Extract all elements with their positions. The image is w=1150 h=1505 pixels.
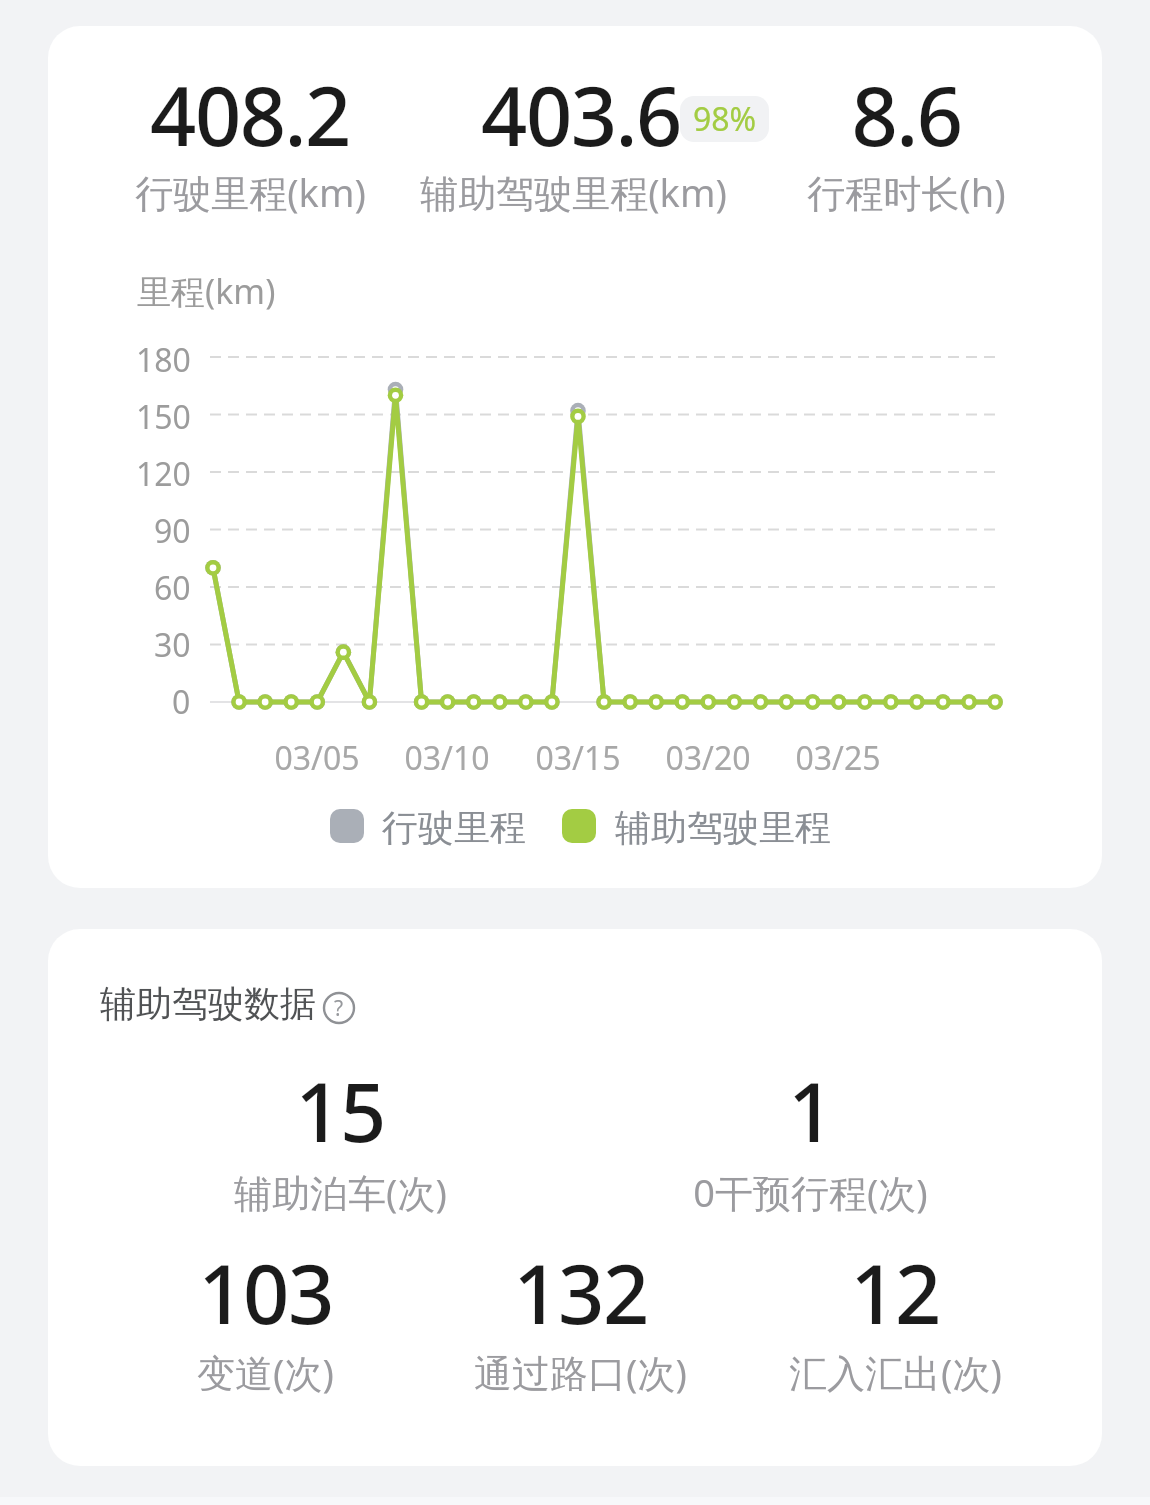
- staticText: 103: [198, 1237, 333, 1347]
- staticText: 403.6: [481, 59, 681, 169]
- staticText: 行程时长(h): [807, 166, 1006, 218]
- staticText: 60: [154, 566, 191, 610]
- staticText: 408.2: [150, 59, 350, 169]
- staticText: 30: [154, 623, 191, 667]
- staticText: 03/15: [535, 736, 621, 780]
- button[interactable]: 98%: [680, 96, 769, 142]
- staticText: 180: [136, 338, 191, 382]
- staticText: 03/25: [795, 736, 881, 780]
- staticText: 98%: [693, 97, 757, 141]
- staticText: 132: [513, 1237, 648, 1347]
- staticText: 通过路口(次): [474, 1346, 687, 1398]
- staticText: 15: [295, 1055, 385, 1165]
- staticText: 03/10: [404, 736, 490, 780]
- staticText: 辅助驾驶里程(km): [420, 166, 727, 218]
- staticText: 8.6: [851, 59, 962, 169]
- staticText: 1: [788, 1055, 833, 1165]
- staticText: 150: [136, 395, 191, 439]
- staticText: 90: [154, 509, 191, 553]
- staticText: 03/20: [665, 736, 751, 780]
- staticText: 120: [136, 452, 191, 496]
- staticText: 0干预行程(次): [693, 1166, 928, 1218]
- staticText: 辅助驾驶数据: [100, 981, 316, 1026]
- staticText: 辅助驾驶里程: [615, 805, 831, 850]
- staticText: 变道(次): [197, 1346, 334, 1398]
- button[interactable]: ?: [317, 986, 361, 1030]
- staticText: 辅助泊车(次): [234, 1166, 447, 1218]
- staticText: 里程(km): [137, 268, 276, 314]
- staticText: 汇入汇出(次): [789, 1346, 1002, 1398]
- staticText: 行驶里程: [382, 805, 526, 850]
- staticText: 0: [172, 680, 191, 724]
- staticText: 12: [850, 1237, 940, 1347]
- staticText: 03/05: [274, 736, 360, 780]
- staticText: 行驶里程(km): [135, 166, 366, 218]
- staticText: ?: [334, 994, 344, 1023]
